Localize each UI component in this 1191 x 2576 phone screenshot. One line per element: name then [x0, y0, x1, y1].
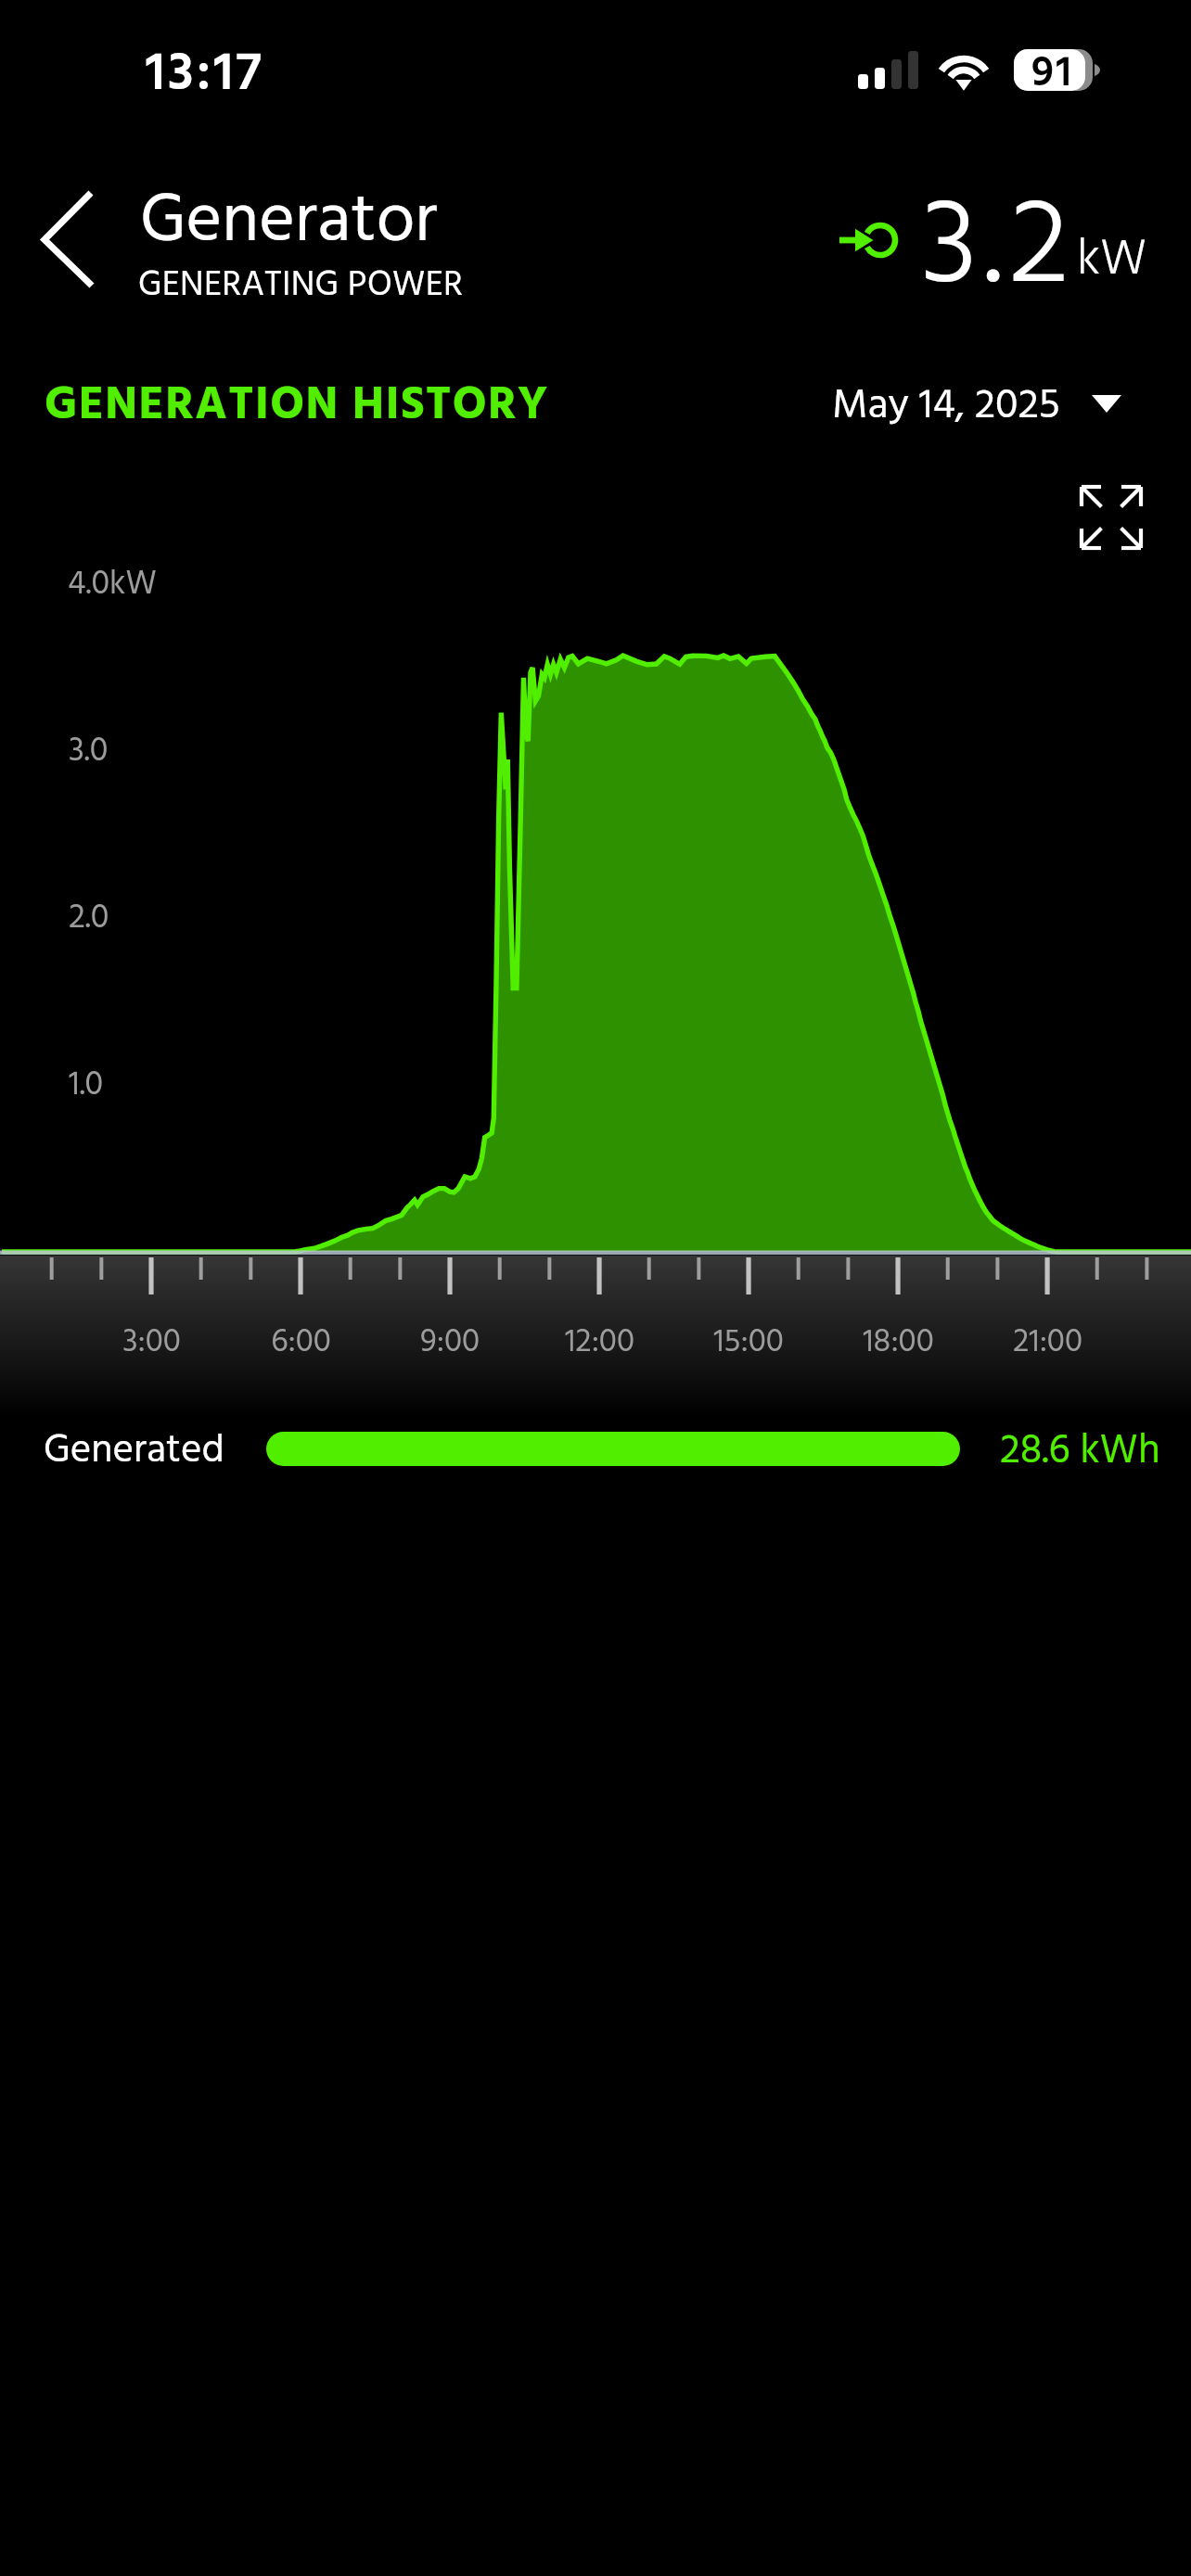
staticText: 15:00 [713, 1317, 784, 1369]
staticText: May 14, 2025 [832, 374, 1060, 440]
staticText: 4.0kW [68, 558, 158, 612]
staticText: Generator [140, 168, 438, 277]
staticText: 13:17 [146, 32, 264, 119]
staticText: GENERATION HISTORY [45, 369, 549, 443]
staticText: 1.0 [69, 1059, 104, 1113]
staticText: 21:00 [1013, 1317, 1082, 1369]
staticText: 18:00 [863, 1317, 934, 1369]
staticText: 9:00 [420, 1317, 480, 1369]
button[interactable]: Full screen [1065, 471, 1158, 564]
staticText: 28.6 kWh [1000, 1420, 1160, 1485]
staticText: kW [1077, 221, 1147, 300]
button[interactable]: May 14, 2025 [807, 352, 1154, 441]
button[interactable]: GENERATION HISTORY [19, 352, 575, 441]
staticText: 3.2 [921, 152, 1077, 348]
staticText: 3:00 [122, 1317, 181, 1369]
staticText: 3.0 [69, 725, 109, 779]
button[interactable]: Back [17, 172, 117, 308]
staticText: Generated [44, 1420, 224, 1484]
staticText: 2.0 [69, 892, 109, 946]
button[interactable]: Generating power [830, 189, 932, 291]
staticText: 6:00 [271, 1317, 331, 1369]
staticText: 12:00 [565, 1317, 634, 1369]
staticText: 91 [1031, 40, 1074, 105]
staticText: GENERATING POWER [138, 258, 464, 314]
